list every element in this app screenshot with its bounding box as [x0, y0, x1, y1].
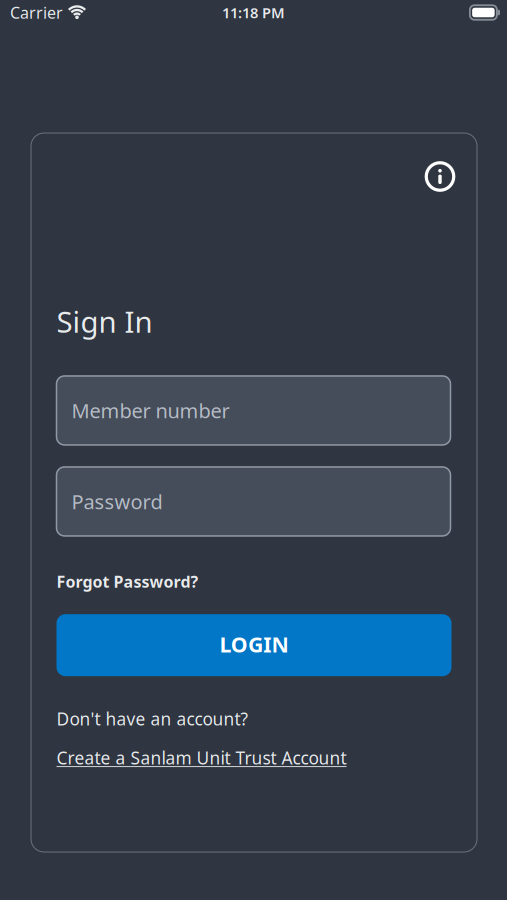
button[interactable] — [424, 161, 455, 192]
staticText: LOGIN — [219, 630, 289, 658]
button[interactable]: Forgot Password? — [56, 571, 198, 592]
staticText: Forgot Password? — [56, 571, 198, 592]
staticText: Member number — [71, 397, 229, 424]
staticText: Carrier — [10, 2, 63, 23]
button[interactable]: LOGIN — [56, 614, 451, 676]
button[interactable]: Member number — [56, 376, 450, 445]
button[interactable]: Password — [56, 467, 450, 536]
staticText: 11:18 PM — [222, 3, 285, 22]
staticText: Password — [71, 488, 162, 515]
staticText: Don't have an account? — [56, 707, 248, 730]
staticText: Create a Sanlam Unit Trust Account — [56, 746, 346, 769]
staticText: Sign In — [56, 302, 152, 341]
button[interactable]: Create a Sanlam Unit Trust Account — [56, 746, 346, 769]
